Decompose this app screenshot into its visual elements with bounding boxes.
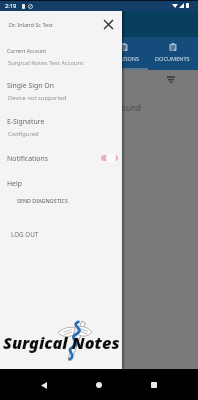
staticText: PATIENTS: [62, 55, 87, 63]
button[interactable]: Current Account: [0, 48, 122, 67]
staticText: Configured: [8, 130, 39, 138]
button[interactable]: ORDERS: [0, 37, 50, 70]
staticText: ORDERS: [14, 55, 36, 63]
button[interactable]: SEND DIAGNOSTICS: [14, 194, 71, 207]
button[interactable]: DICTATIONS: [99, 37, 148, 70]
button[interactable]: [99, 151, 121, 165]
staticText: Surgical Notes: [3, 332, 120, 354]
staticText: E-Signature: [7, 117, 45, 126]
staticText: Dr. Inland Sc Test: [9, 21, 53, 28]
staticText: No Documents Found: [58, 102, 141, 113]
staticText: DICTATIONS: [107, 55, 140, 63]
button[interactable]: Single Sign On: [0, 81, 122, 102]
staticText: Surgical Notes Test Account: [8, 59, 84, 67]
button[interactable]: Notifications: [0, 149, 122, 167]
button[interactable]: Home: [88, 374, 110, 396]
staticText: SEND DIAGNOSTICS: [17, 197, 68, 204]
staticText: Help: [7, 179, 23, 188]
staticText: Single Sign On: [7, 81, 55, 90]
staticText: Current Account: [7, 48, 47, 55]
staticText: Notifications: [7, 154, 48, 163]
staticText: Device not supported: [8, 94, 67, 102]
staticText: LOG OUT: [11, 230, 39, 239]
button[interactable]: Filter: [164, 72, 178, 86]
button[interactable]: E-Signature: [0, 117, 122, 138]
button[interactable]: DOCUMENTS: [148, 37, 197, 70]
button[interactable]: Close: [100, 16, 116, 32]
staticText: 2:19: [5, 2, 17, 10]
button[interactable]: Back: [33, 374, 55, 396]
button[interactable]: LOG OUT: [0, 225, 122, 243]
button[interactable]: Recent apps: [143, 374, 165, 396]
button[interactable]: PATIENTS: [50, 37, 99, 70]
staticText: DOCUMENTS: [155, 55, 190, 63]
